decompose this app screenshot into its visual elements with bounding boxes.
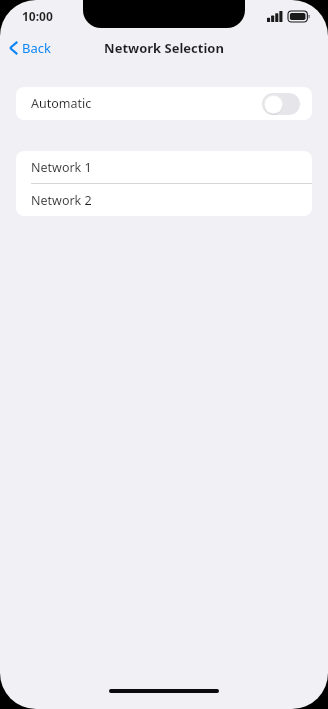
other: Battery full [288,11,310,22]
staticText: Network 1 [31,159,92,176]
button[interactable]: Network 1 [16,151,312,183]
staticText: Back [22,39,51,57]
staticText: Network Selection [104,39,224,57]
other: Cellular signal strength [267,11,283,22]
button[interactable]: Automatic network selection toggle [262,93,300,115]
staticText: 10:00 [22,8,53,24]
staticText: Network 2 [31,192,92,209]
button[interactable]: Automatic [16,87,312,120]
staticText: Automatic [31,95,92,112]
button[interactable]: Back [0,34,61,62]
button[interactable]: Network 2 [16,184,312,216]
